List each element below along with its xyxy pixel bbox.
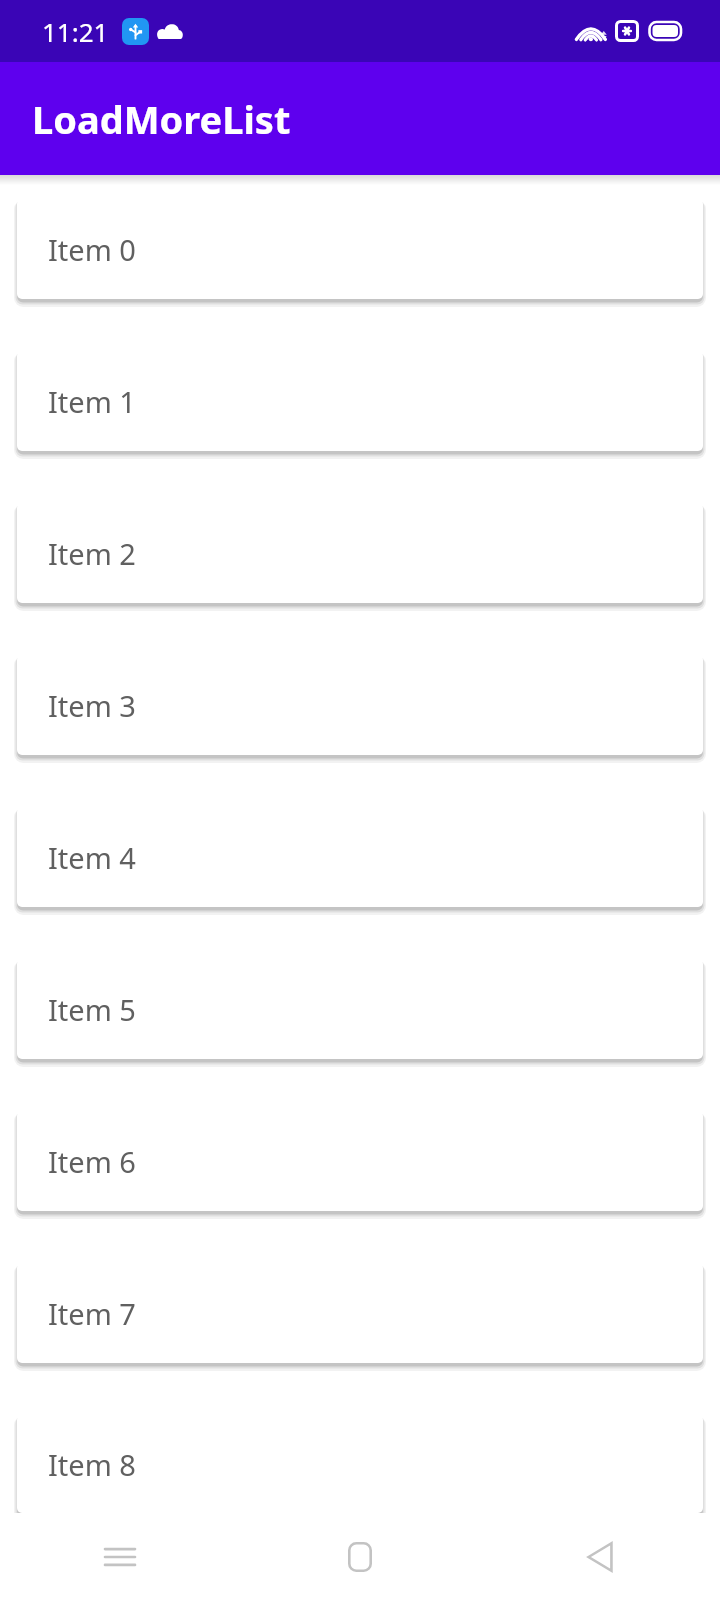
staticText: Item 5 xyxy=(48,990,136,1029)
button[interactable]: Item 5 xyxy=(17,959,703,1059)
button[interactable]: Item 6 xyxy=(17,1111,703,1211)
staticText: Item 4 xyxy=(48,838,136,877)
staticText: Item 1 xyxy=(48,382,136,421)
button[interactable]: Recent apps xyxy=(83,1520,157,1594)
staticText: Item 8 xyxy=(48,1445,136,1484)
button[interactable]: Item 1 xyxy=(17,351,703,451)
button[interactable]: Item 7 xyxy=(17,1263,703,1363)
button[interactable]: Back xyxy=(563,1520,637,1594)
staticText: Item 2 xyxy=(48,534,136,573)
button[interactable]: Item 0 xyxy=(17,199,703,299)
staticText: LoadMoreList xyxy=(32,93,291,145)
button[interactable]: Item 2 xyxy=(17,503,703,603)
button[interactable]: Home xyxy=(323,1520,397,1594)
button[interactable]: Item 3 xyxy=(17,655,703,755)
staticText: Item 6 xyxy=(48,1142,136,1181)
button[interactable]: Item 4 xyxy=(17,807,703,907)
staticText: Item 0 xyxy=(48,230,136,269)
staticText: Item 7 xyxy=(48,1294,136,1333)
staticText: 11:21 xyxy=(42,14,109,49)
staticText: Item 3 xyxy=(48,686,136,725)
button[interactable]: Item 8 xyxy=(17,1415,703,1513)
